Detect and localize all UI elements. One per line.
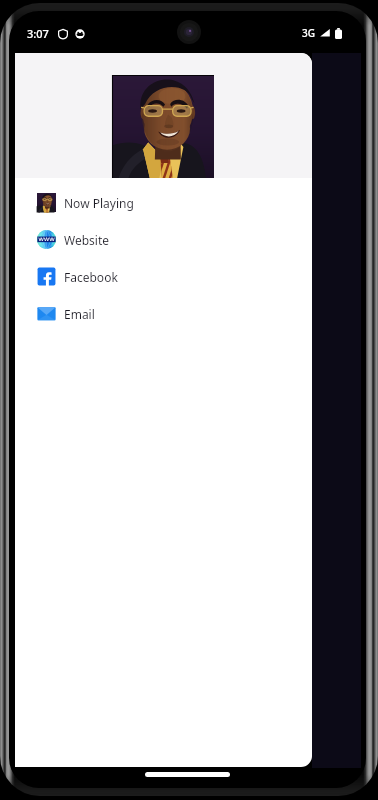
staticText: Email: [64, 306, 95, 322]
staticText: Website: [64, 232, 110, 248]
staticText: Facebook: [64, 269, 118, 285]
button[interactable]: Artist photo: [112, 75, 214, 178]
button[interactable]: Website: [15, 221, 312, 258]
staticText: Now Playing: [64, 195, 134, 211]
staticText: 3G: [302, 26, 315, 40]
button[interactable]: Email: [15, 295, 312, 332]
staticText: 3:07: [27, 26, 49, 41]
button[interactable]: Now Playing: [15, 184, 312, 221]
button[interactable]: Facebook: [15, 258, 312, 295]
